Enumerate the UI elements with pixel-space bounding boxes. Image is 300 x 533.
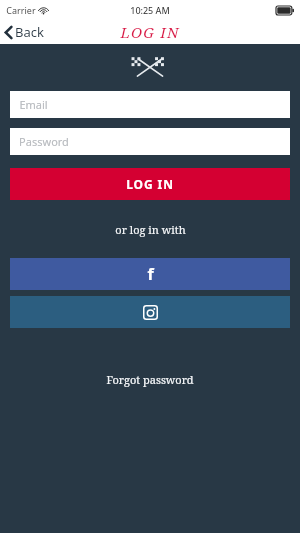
staticText: Carrier [6, 4, 36, 16]
staticText: Password [19, 134, 69, 149]
button[interactable]: Email [10, 91, 290, 118]
staticText: LOG IN [126, 176, 174, 192]
other: Racing flags logo [129, 55, 171, 77]
staticText: Email [19, 97, 48, 112]
staticText: Forgot password [106, 372, 194, 387]
button[interactable]: Log in with Facebook [10, 258, 290, 290]
button[interactable]: Password [10, 128, 290, 155]
staticText: Back [15, 23, 44, 41]
button[interactable]: Forgot password [96, 368, 204, 391]
staticText: f [147, 263, 154, 285]
staticText: 10:25 AM [130, 4, 170, 16]
staticText: or log in with [115, 222, 186, 237]
button[interactable]: Back [0, 21, 52, 43]
staticText: LOG IN [120, 22, 180, 42]
button[interactable]: Log in with Instagram [10, 296, 290, 328]
button[interactable]: LOG IN [10, 168, 290, 200]
